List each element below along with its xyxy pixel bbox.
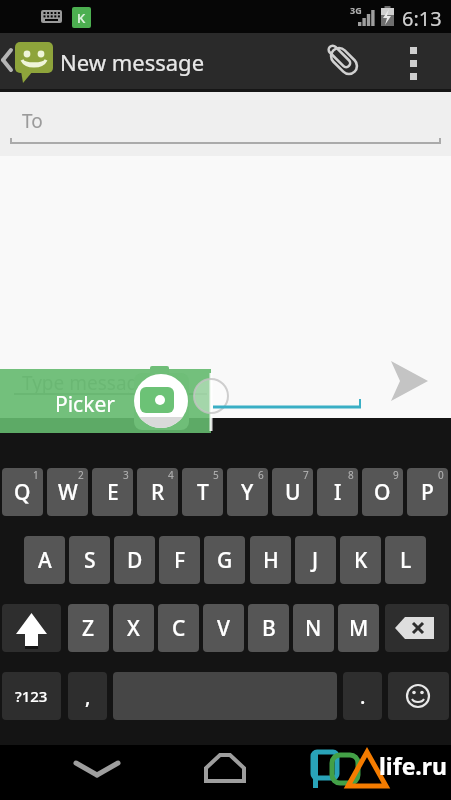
staticText: 3 bbox=[123, 468, 129, 482]
staticText: L bbox=[400, 546, 412, 575]
staticText: Y bbox=[241, 478, 254, 507]
staticText: T bbox=[197, 478, 209, 507]
staticText: , bbox=[85, 683, 91, 710]
staticText: O bbox=[374, 478, 391, 507]
staticText: M bbox=[349, 614, 369, 643]
staticText: 0 bbox=[438, 468, 444, 482]
staticText: H bbox=[263, 546, 279, 575]
staticText: K bbox=[354, 546, 368, 575]
staticText: Type message bbox=[22, 370, 149, 396]
staticText: F bbox=[174, 546, 186, 575]
staticText: ?123 bbox=[15, 686, 48, 706]
staticText: 9 bbox=[393, 468, 399, 482]
staticText: 5 bbox=[213, 468, 219, 482]
staticText: X bbox=[127, 614, 140, 643]
staticText: . bbox=[360, 683, 366, 710]
staticText: life.ru bbox=[379, 750, 448, 781]
staticText: A bbox=[38, 546, 52, 575]
staticText: Q bbox=[14, 478, 31, 507]
staticText: New message bbox=[60, 47, 205, 77]
staticText: K bbox=[77, 9, 86, 27]
staticText: 2 bbox=[78, 468, 84, 482]
staticText: 8 bbox=[348, 468, 354, 482]
staticText: U bbox=[285, 478, 301, 507]
staticText: 6:13 bbox=[402, 5, 442, 32]
staticText: 4 bbox=[168, 468, 174, 482]
staticText: C bbox=[172, 614, 186, 643]
staticText: J bbox=[312, 546, 319, 575]
staticText: W bbox=[58, 478, 78, 507]
staticText: I bbox=[334, 478, 342, 507]
staticText: S bbox=[84, 546, 96, 575]
staticText: 7 bbox=[303, 468, 309, 482]
staticText: To bbox=[22, 108, 43, 134]
staticText: V bbox=[217, 614, 230, 643]
staticText: P bbox=[421, 478, 434, 507]
staticText: D bbox=[127, 546, 143, 575]
staticText: N bbox=[305, 614, 322, 643]
staticText: Picker bbox=[55, 390, 115, 419]
staticText: 6 bbox=[258, 468, 264, 482]
staticText: E bbox=[107, 478, 119, 507]
staticText: B bbox=[262, 614, 276, 643]
staticText: G bbox=[217, 546, 233, 575]
staticText: 3G bbox=[350, 4, 362, 16]
staticText: Z bbox=[82, 614, 95, 643]
staticText: R bbox=[151, 478, 165, 507]
staticText: 1 bbox=[33, 468, 39, 482]
